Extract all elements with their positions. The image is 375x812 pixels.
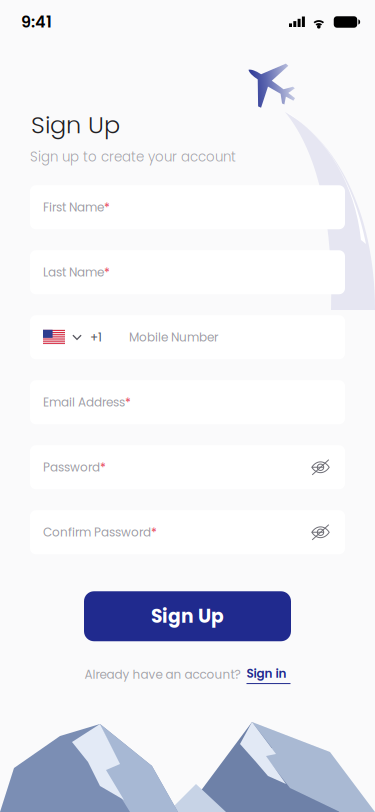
button[interactable]: Email Address xyxy=(30,380,345,424)
staticText: Sign Up xyxy=(151,603,224,629)
button[interactable]: Password xyxy=(30,445,345,489)
staticText: Sign up to create your account xyxy=(30,148,236,166)
staticText: Confirm Password xyxy=(43,524,151,541)
staticText: +1 xyxy=(90,329,102,346)
staticText: Mobile Number xyxy=(129,329,218,346)
staticText: * xyxy=(151,524,157,541)
staticText: Password xyxy=(43,459,100,476)
button[interactable]: +1 xyxy=(30,315,345,359)
staticText: Sign in xyxy=(246,665,286,682)
staticText: Email Address xyxy=(43,394,125,411)
button[interactable]: First Name xyxy=(30,185,345,229)
staticText: First Name xyxy=(43,199,104,216)
staticText: * xyxy=(104,199,110,216)
staticText: Already have an account? xyxy=(84,666,240,683)
button[interactable]: Confirm Password xyxy=(30,510,345,554)
button[interactable]: Sign in xyxy=(240,665,290,684)
staticText: 9:41 xyxy=(21,11,52,33)
staticText: * xyxy=(125,394,131,411)
button[interactable]: Last Name xyxy=(30,250,345,294)
staticText: Last Name xyxy=(43,264,104,281)
staticText: Sign Up xyxy=(31,108,120,142)
staticText: * xyxy=(104,264,110,281)
staticText: * xyxy=(100,459,106,476)
button[interactable]: Sign Up xyxy=(84,591,291,641)
